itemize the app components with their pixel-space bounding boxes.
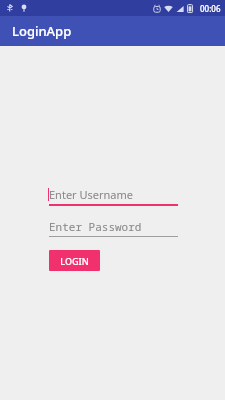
staticText: 00:06 xyxy=(200,3,221,14)
staticText: LoginApp xyxy=(12,22,72,40)
button[interactable]: LOGIN xyxy=(49,250,100,271)
button[interactable]: Enter Password xyxy=(49,217,178,236)
staticText: Enter Username xyxy=(49,187,134,202)
button[interactable]: Enter Username xyxy=(49,185,178,204)
staticText: Enter Password xyxy=(49,219,142,234)
staticText: LOGIN xyxy=(60,255,89,267)
